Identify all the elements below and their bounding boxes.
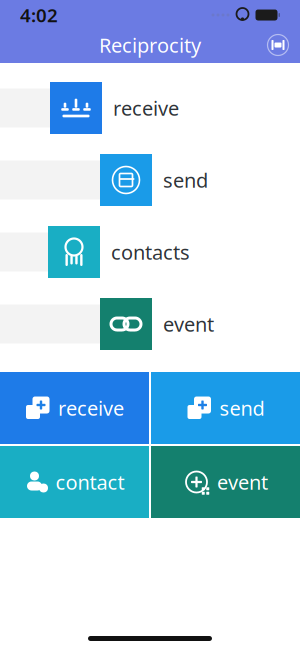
staticText: send [163, 167, 208, 193]
button[interactable]: contacts [0, 226, 300, 278]
button[interactable]: contact [0, 446, 149, 518]
staticText: event [163, 311, 214, 337]
staticText: contacts [111, 239, 190, 265]
staticText: 4:02 [20, 3, 58, 27]
staticText: contact [55, 469, 124, 495]
button[interactable]: event [0, 298, 300, 350]
button[interactable]: send [0, 154, 300, 206]
staticText: receive [113, 95, 179, 121]
button[interactable]: receive [0, 82, 300, 134]
button[interactable]: Resize [256, 29, 300, 61]
staticText: receive [58, 395, 124, 421]
button[interactable]: event [151, 446, 300, 518]
staticText: Reciprocity [99, 32, 201, 58]
staticText: event [217, 469, 268, 495]
button[interactable]: send [151, 372, 300, 444]
staticText: send [219, 395, 264, 421]
button[interactable]: receive [0, 372, 149, 444]
